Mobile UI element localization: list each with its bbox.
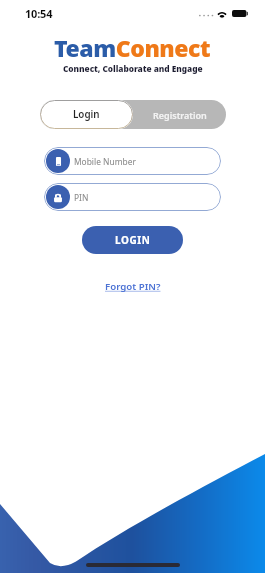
staticText: Connect, Collaborate and Engage xyxy=(63,63,203,74)
staticText: Forgot PIN? xyxy=(105,280,161,293)
button[interactable]: Mobile Number xyxy=(44,147,221,175)
staticText: LOGIN xyxy=(115,233,151,247)
button[interactable]: Forgot PIN? xyxy=(101,276,165,297)
button[interactable]: Login xyxy=(40,100,133,129)
staticText: Login xyxy=(73,108,100,121)
button[interactable]: PIN xyxy=(44,183,221,211)
staticText: 10:54 xyxy=(25,6,53,21)
staticText: PIN xyxy=(74,192,89,203)
button[interactable]: Registration xyxy=(133,100,226,129)
button[interactable]: LOGIN xyxy=(82,226,183,254)
staticText: Registration xyxy=(153,109,207,121)
staticText: TeamConnect xyxy=(54,32,211,63)
staticText: Mobile Number xyxy=(74,156,136,167)
